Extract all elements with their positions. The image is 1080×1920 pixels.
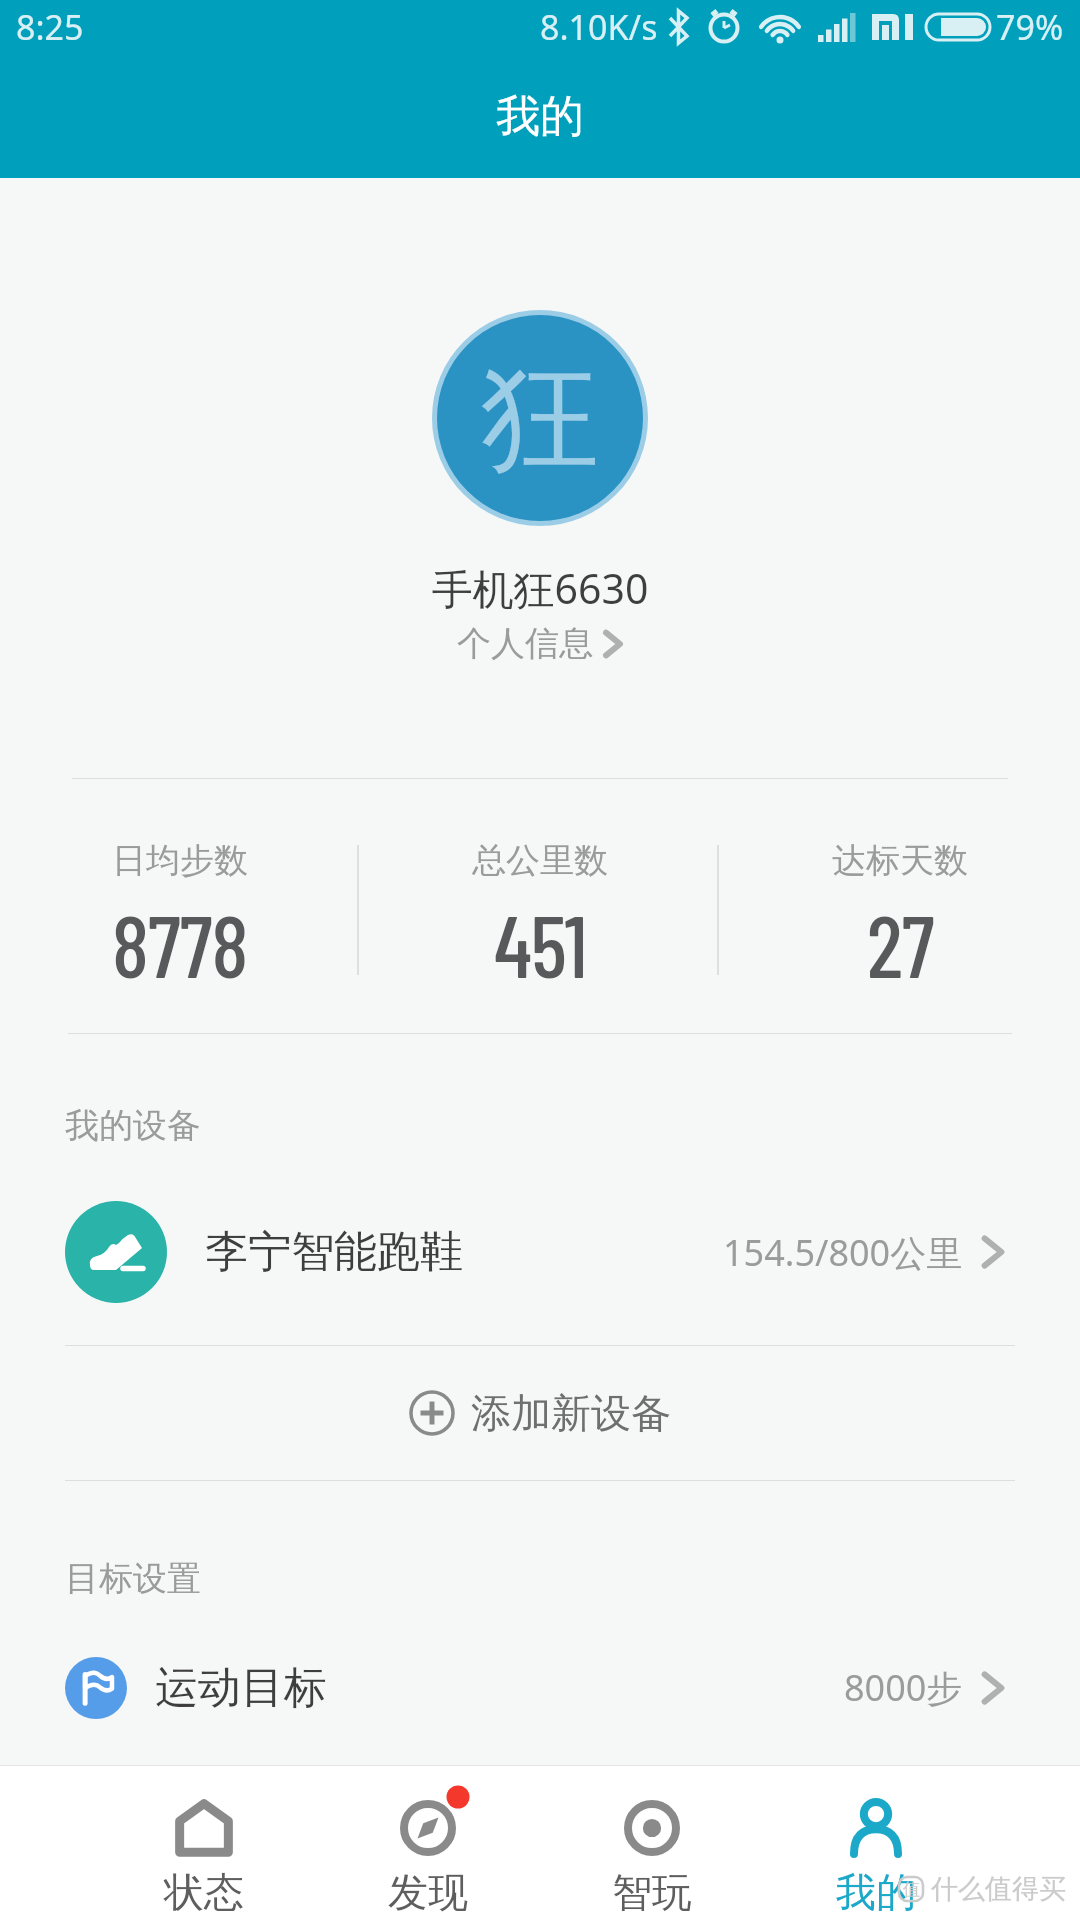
staticText: 个人信息 [457, 622, 593, 665]
button[interactable]: 我的 [764, 1765, 988, 1920]
staticText: 手机狂6630 [0, 560, 1080, 616]
button[interactable]: 狂 [432, 310, 648, 526]
staticText: 什么值得买 [931, 1872, 1066, 1906]
staticText: 我的 [496, 89, 584, 144]
staticText: 智玩 [612, 1867, 692, 1917]
staticText: 8.10K/s [540, 4, 658, 50]
staticText: 运动目标 [155, 1661, 327, 1715]
staticText: 值 [903, 1879, 920, 1900]
staticText: 状态 [164, 1867, 244, 1917]
staticText: 李宁智能跑鞋 [205, 1225, 463, 1279]
button[interactable]: 运动目标 [0, 1610, 1080, 1765]
staticText: 目标设置 [65, 1557, 201, 1600]
button[interactable]: 状态 [92, 1765, 316, 1920]
staticText: 总公里数 [472, 839, 608, 882]
staticText: 27 [867, 892, 934, 995]
staticText: 154.5/800公里 [723, 1228, 963, 1277]
staticText: 我的 [836, 1867, 916, 1917]
staticText: 8000步 [844, 1663, 963, 1712]
staticText: 达标天数 [832, 839, 968, 882]
button[interactable]: 个人信息 [457, 622, 623, 665]
staticText: 日均步数 [112, 839, 248, 882]
staticText: 发现 [388, 1867, 468, 1917]
button[interactable]: 添加新设备 [0, 1346, 1080, 1480]
staticText: 8778 [112, 892, 248, 995]
button[interactable]: 发现 [316, 1765, 540, 1920]
staticText: 狂 [481, 344, 599, 493]
staticText: 451 [494, 892, 587, 995]
button[interactable]: 李宁智能跑鞋 [0, 1159, 1080, 1345]
button[interactable]: 智玩 [540, 1765, 764, 1920]
staticText: 8:25 [16, 4, 84, 50]
staticText: 添加新设备 [471, 1388, 671, 1438]
staticText: 我的设备 [65, 1104, 201, 1147]
staticText: 79% [996, 4, 1064, 50]
